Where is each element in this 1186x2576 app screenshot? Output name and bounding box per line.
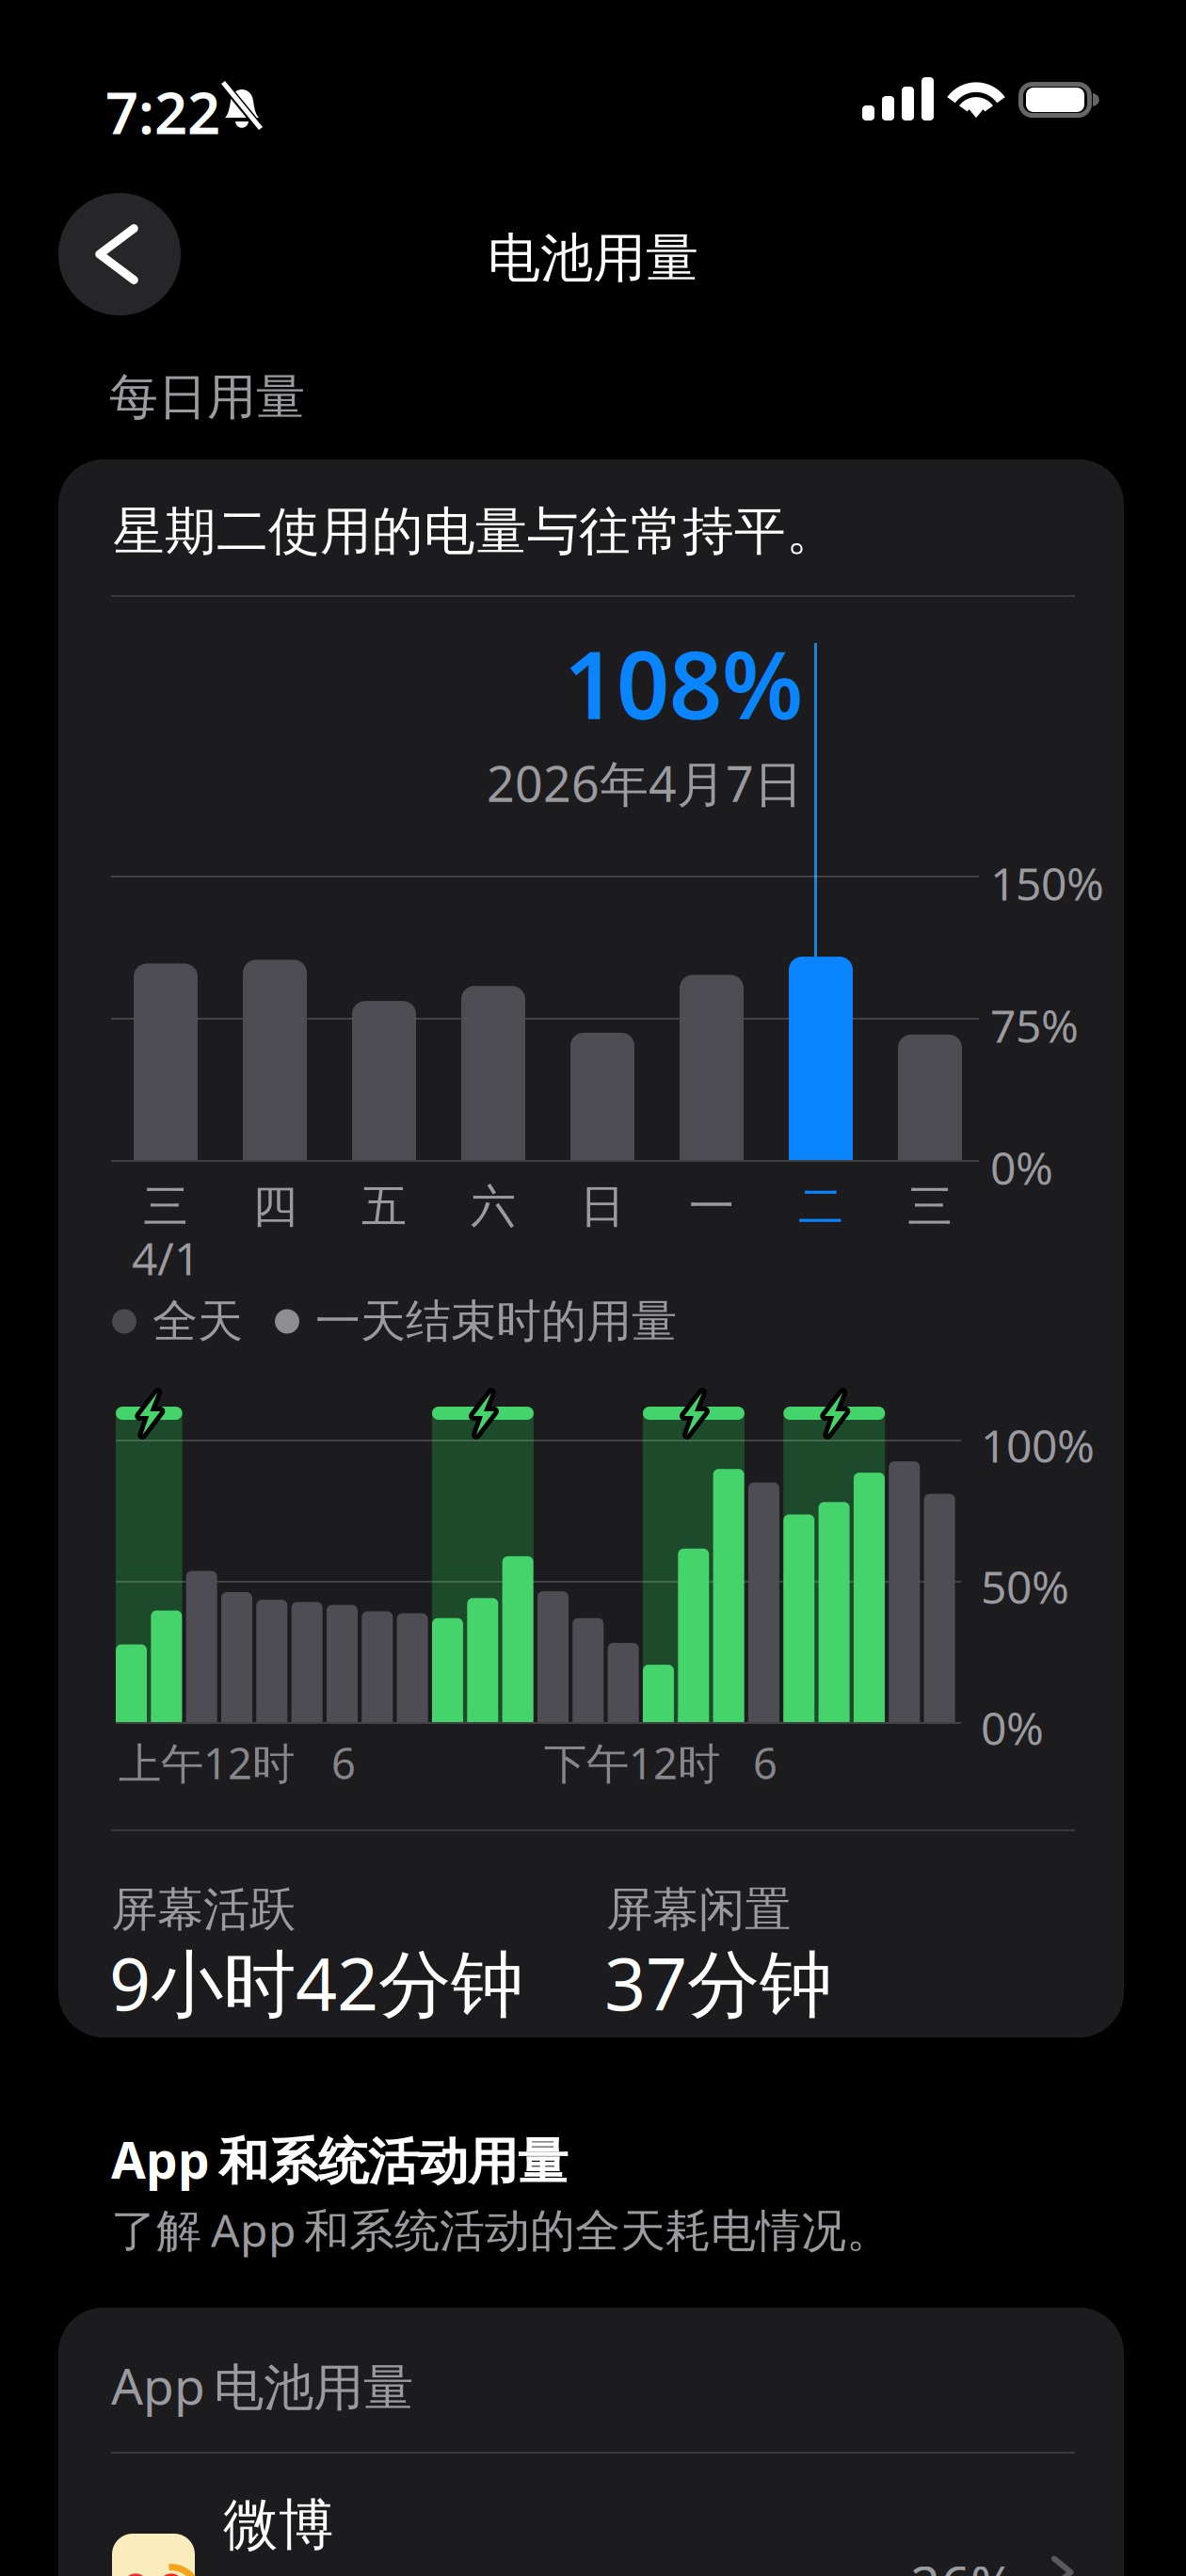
staticText: 屏幕闲置 [606, 1881, 791, 1938]
staticText: 五 [361, 1179, 407, 1234]
staticText: 星期二使用的电量与往常持平。 [113, 500, 838, 563]
staticText: 150% [990, 853, 1104, 913]
staticText: 37分钟 [604, 1934, 832, 2031]
staticText: 屏幕活跃 [111, 1881, 296, 1938]
staticText: 下午12时 [544, 1734, 720, 1791]
staticText: 三 [907, 1179, 953, 1234]
button[interactable]: 微博 [58, 2491, 1124, 2576]
staticText: 6 [331, 1734, 356, 1791]
staticText: App 电池用量 [111, 2352, 413, 2419]
staticText: 26% [910, 2550, 1015, 2576]
staticText: 108% [564, 621, 803, 745]
staticText: 电池用量 [488, 226, 698, 291]
staticText: App 和系统活动用量 [111, 2126, 568, 2193]
staticText: 6 [753, 1734, 777, 1791]
staticText: 7:22 [105, 73, 220, 150]
staticText: 日 [580, 1179, 625, 1234]
staticText: 一 [689, 1179, 734, 1234]
button[interactable]: Back [58, 193, 181, 315]
staticText: 2026年4月7日 [487, 750, 803, 815]
staticText: 三 [143, 1179, 188, 1234]
staticText: 50% [981, 1556, 1069, 1616]
staticText: 二 [798, 1179, 843, 1234]
staticText: 4/1 [132, 1228, 200, 1288]
staticText: 上午12时 [119, 1734, 295, 1791]
staticText: 每日用量 [109, 367, 305, 427]
staticText: 75% [990, 995, 1079, 1055]
staticText: 四 [252, 1179, 297, 1234]
staticText: 全天 [152, 1294, 243, 1349]
staticText: 0% [990, 1137, 1053, 1197]
staticText: 9小时42分钟 [109, 1934, 523, 2031]
staticText: 100% [981, 1415, 1095, 1475]
staticText: 0% [981, 1698, 1044, 1758]
staticText: 微博 [223, 2491, 334, 2559]
staticText: 六 [471, 1179, 516, 1234]
staticText: 一天结束时的用量 [315, 1294, 677, 1349]
staticText: 了解 App 和系统活动的全天耗电情况。 [111, 2199, 891, 2259]
